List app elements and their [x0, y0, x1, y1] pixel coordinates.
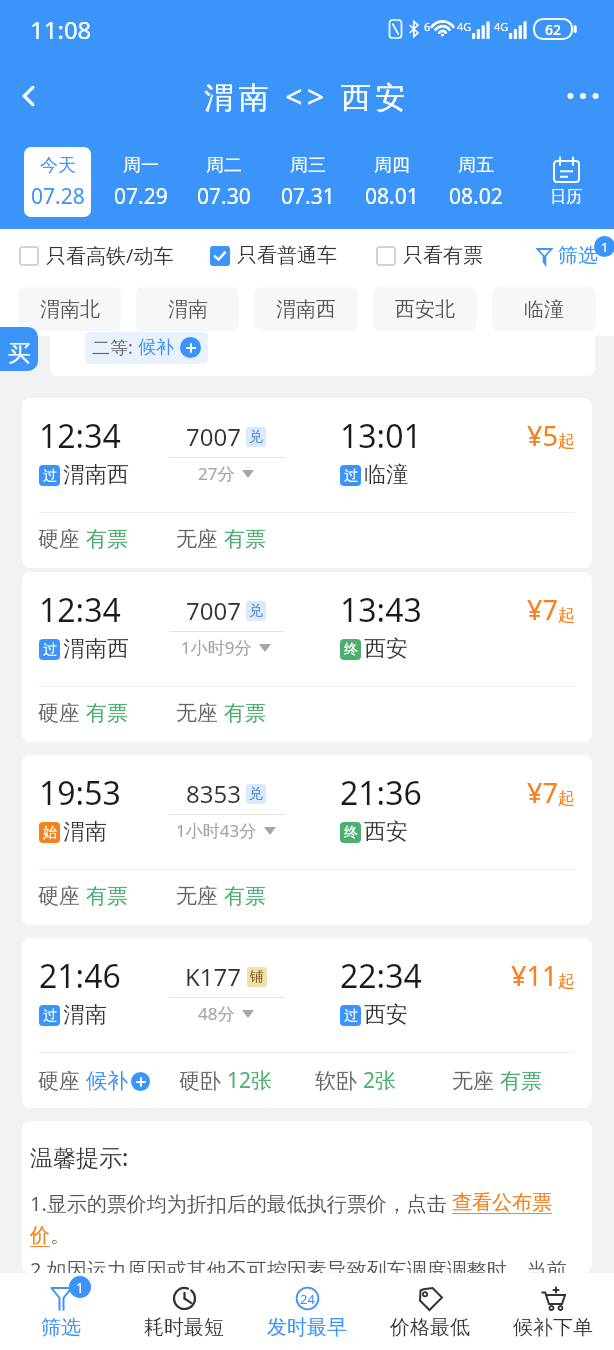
- button[interactable]: 买: [0, 327, 38, 371]
- staticText: 6: [424, 19, 431, 34]
- staticText: 只看有票: [403, 243, 483, 268]
- staticText: 07.30: [197, 182, 251, 211]
- staticText: 二等:: [92, 335, 138, 360]
- staticText: 有票: [224, 526, 266, 552]
- button[interactable]: 周一: [107, 147, 174, 217]
- staticText: 起: [558, 431, 575, 452]
- button[interactable]: 渭南西: [254, 287, 358, 331]
- staticText: 2张: [363, 1066, 397, 1095]
- staticText: 08.01: [365, 182, 419, 211]
- button[interactable]: 西安北: [373, 287, 477, 331]
- staticText: 买: [8, 339, 31, 368]
- button[interactable]: 只看普通车: [210, 237, 337, 274]
- staticText: 周五: [458, 154, 494, 177]
- staticText: 候补下单: [513, 1315, 593, 1340]
- staticText: 临潼: [364, 461, 408, 489]
- button[interactable]: 价格最低: [368, 1275, 491, 1350]
- button[interactable]: 周四: [358, 147, 426, 217]
- button[interactable]: 19:53: [22, 755, 592, 925]
- staticText: 08.02: [449, 182, 503, 211]
- staticText: 渭南: [63, 818, 107, 846]
- button[interactable]: 12:34: [22, 398, 592, 568]
- staticText: 起: [558, 605, 575, 626]
- staticText: 12:34: [39, 414, 121, 458]
- button[interactable]: 筛选: [0, 1275, 122, 1350]
- staticText: 11:08: [30, 13, 92, 46]
- staticText: 耗时最短: [144, 1315, 224, 1340]
- staticText: 价格最低: [390, 1315, 470, 1340]
- staticText: 07.29: [114, 182, 168, 211]
- staticText: 有票: [86, 526, 128, 552]
- staticText: 始: [43, 824, 57, 842]
- staticText: 周三: [290, 154, 326, 177]
- staticText: 7007: [186, 594, 241, 627]
- staticText: 价: [30, 1223, 50, 1248]
- button[interactable]: Back: [0, 61, 58, 131]
- staticText: 只看高铁/动车: [46, 242, 174, 269]
- button[interactable]: 渭南: [136, 287, 239, 331]
- staticText: 无座: [176, 883, 218, 909]
- staticText: 4G: [494, 19, 509, 34]
- staticText: 终: [344, 824, 358, 842]
- staticText: 4G: [457, 19, 472, 34]
- button[interactable]: More options: [552, 61, 614, 131]
- button[interactable]: 只看有票: [376, 237, 483, 274]
- staticText: 渭南西: [63, 461, 129, 489]
- button[interactable]: 发时最早: [245, 1275, 368, 1350]
- staticText: 07.31: [281, 182, 335, 211]
- staticText: 兑: [249, 428, 263, 446]
- staticText: 有票: [500, 1068, 542, 1094]
- staticText: 硬座: [38, 700, 80, 726]
- staticText: 1小时43分: [176, 819, 257, 842]
- staticText: ¥7: [527, 591, 558, 628]
- staticText: 过: [43, 467, 57, 485]
- staticText: 查看公布票: [452, 1190, 552, 1215]
- staticText: 西安: [364, 1001, 408, 1029]
- staticText: 1: [76, 1278, 85, 1297]
- staticText: 无座: [452, 1068, 494, 1094]
- staticText: 有票: [224, 700, 266, 726]
- staticText: 筛选: [41, 1315, 81, 1340]
- staticText: 07.28: [31, 182, 85, 211]
- button[interactable]: 渭南北: [18, 287, 121, 331]
- staticText: 过: [344, 1007, 358, 1025]
- staticText: 过: [43, 641, 57, 659]
- staticText: 21:46: [39, 954, 121, 998]
- staticText: 27分: [198, 462, 235, 485]
- staticText: 今天: [40, 154, 76, 177]
- staticText: 2.如因运力原因或其他不可控因素导致列车调度调整时，当前车: [30, 1256, 584, 1273]
- staticText: 12:34: [39, 588, 121, 632]
- staticText: 周四: [374, 154, 410, 177]
- button[interactable]: 周二: [190, 147, 258, 217]
- staticText: 渭南: [63, 1001, 107, 1029]
- staticText: 8353: [186, 777, 241, 810]
- button[interactable]: 只看高铁/动车: [19, 236, 174, 275]
- staticText: 12张: [227, 1066, 273, 1095]
- staticText: 温馨提示:: [30, 1141, 129, 1172]
- staticText: 1.显示的票价均为折扣后的最低执行票价，点击: [30, 1190, 452, 1217]
- button[interactable]: 候补下单: [491, 1275, 614, 1350]
- staticText: 62: [545, 20, 562, 39]
- staticText: 过: [344, 467, 358, 485]
- staticText: 起: [558, 971, 575, 992]
- staticText: 渭南北: [40, 297, 100, 322]
- button[interactable]: 12:34: [22, 572, 592, 742]
- button[interactable]: 耗时最短: [122, 1275, 245, 1350]
- button[interactable]: 临潼: [492, 287, 596, 331]
- staticText: 只看普通车: [237, 243, 337, 268]
- staticText: 13:01: [340, 414, 422, 458]
- staticText: 有票: [224, 883, 266, 909]
- button[interactable]: 今天: [24, 147, 91, 217]
- staticText: 日历: [550, 187, 582, 207]
- staticText: 7007: [186, 420, 241, 453]
- staticText: 有票: [86, 700, 128, 726]
- button[interactable]: 日历: [518, 134, 614, 229]
- button[interactable]: 周五: [442, 147, 510, 217]
- staticText: 兑: [249, 602, 263, 620]
- staticText: 硬座: [38, 526, 80, 552]
- button[interactable]: 周三: [274, 147, 342, 217]
- button[interactable]: 21:46: [22, 938, 592, 1108]
- button[interactable]: 筛选: [537, 237, 598, 274]
- button[interactable]: [50, 336, 595, 376]
- staticText: K177: [185, 960, 242, 993]
